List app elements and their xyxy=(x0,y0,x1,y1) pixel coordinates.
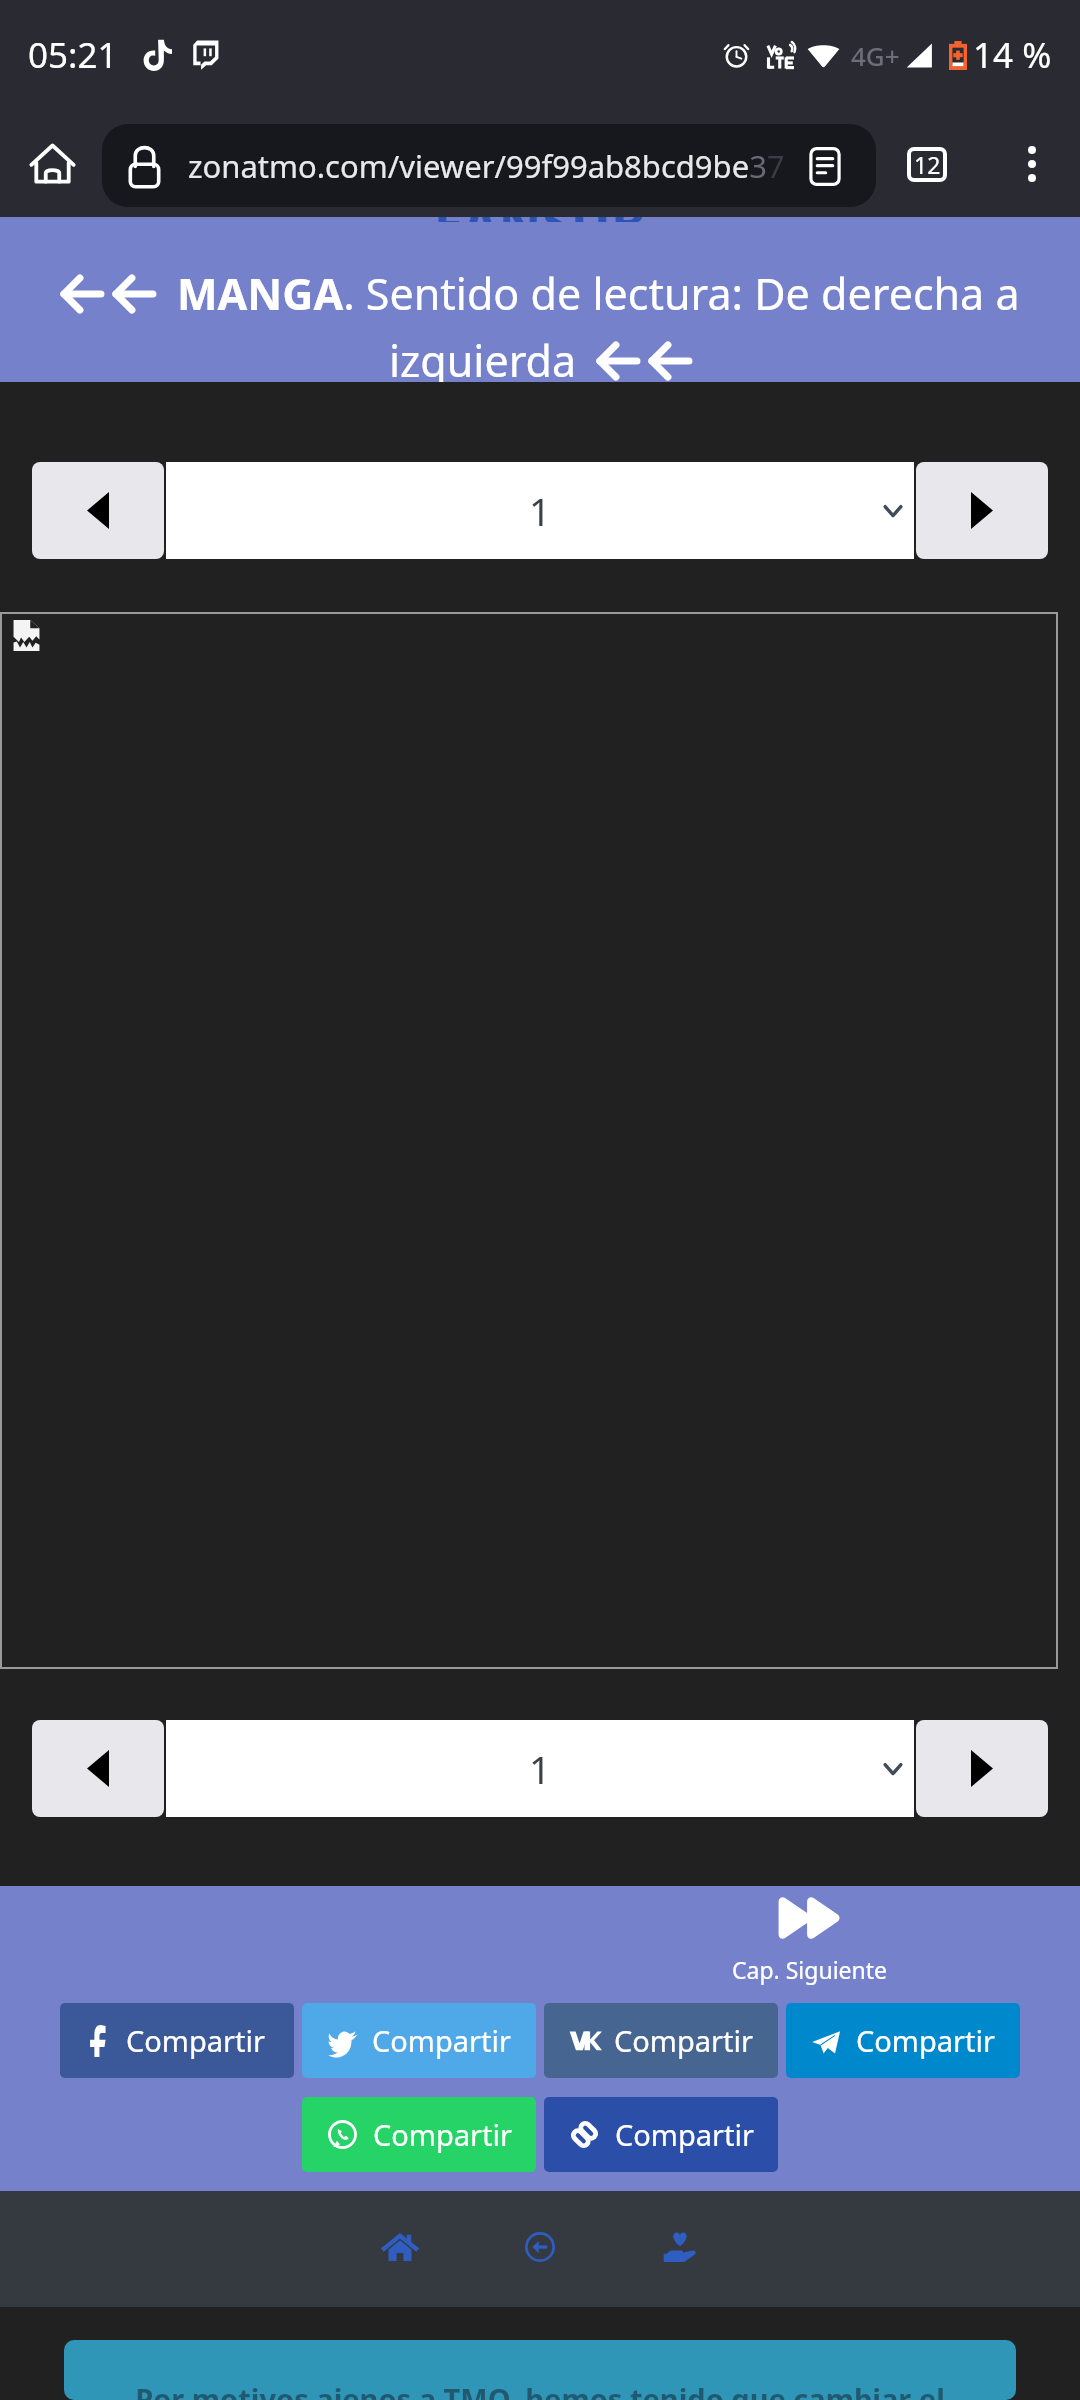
button[interactable]: Home xyxy=(8,120,96,208)
button[interactable]: 1 xyxy=(166,1720,914,1817)
staticText: Compartir xyxy=(373,2115,512,2154)
button[interactable]: Next page xyxy=(916,1720,1048,1817)
button[interactable]: Tabs xyxy=(882,119,972,209)
button[interactable]: Por motivos ajenos a TMO, hemos tenido q… xyxy=(64,2340,1016,2400)
button[interactable]: zonatmo.com/viewer/99f99ab8bcd9be37 xyxy=(102,124,876,207)
staticText: Compartir xyxy=(615,2115,754,2154)
staticText: MANGA. Sentido de lectura: De derecha a xyxy=(177,264,1020,323)
button[interactable]: Reader mode xyxy=(792,133,858,199)
staticText: 12 xyxy=(914,149,941,180)
button[interactable]: Home xyxy=(330,2207,470,2287)
button[interactable]: Compartir xyxy=(302,2097,536,2172)
staticText: Cap. Siguiente xyxy=(732,1954,888,1985)
staticText: zonatmo.com/viewer/99f99ab8bcd9be37 xyxy=(188,145,783,187)
button[interactable]: Back xyxy=(470,2207,610,2287)
button[interactable]: 1 xyxy=(166,462,914,559)
staticText: 1 xyxy=(529,485,551,537)
button[interactable]: Donate xyxy=(610,2207,750,2287)
staticText: 1 xyxy=(529,1743,551,1795)
button[interactable]: Compartir xyxy=(302,2003,536,2078)
button[interactable]: Next page xyxy=(916,462,1048,559)
button[interactable]: Compartir xyxy=(544,2097,778,2172)
button[interactable]: Previous page xyxy=(32,462,164,559)
button[interactable]: Previous page xyxy=(32,1720,164,1817)
staticText: Compartir xyxy=(856,2021,995,2060)
staticText: Compartir xyxy=(614,2021,753,2060)
button[interactable]: More options xyxy=(992,124,1072,204)
staticText: 4G+ xyxy=(851,38,900,73)
staticText: Compartir xyxy=(372,2021,511,2060)
button[interactable]: Compartir xyxy=(786,2003,1020,2078)
staticText: Por motivos ajenos a TMO, hemos tenido q… xyxy=(64,2379,1016,2400)
staticText: Compartir xyxy=(126,2021,265,2060)
button[interactable]: Cap. Siguiente xyxy=(690,1895,930,1985)
button[interactable]: Compartir xyxy=(544,2003,778,2078)
staticText: izquierda xyxy=(389,331,577,382)
staticText: 05:21 xyxy=(28,31,118,79)
staticText: 14 % xyxy=(973,31,1052,79)
button[interactable]: Compartir xyxy=(60,2003,294,2078)
staticText: FANSUB xyxy=(0,217,1080,222)
